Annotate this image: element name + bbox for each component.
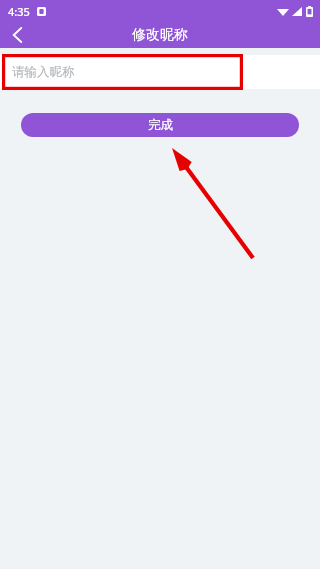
staticText: 修改昵称 <box>132 26 188 44</box>
staticText: 请输入昵称 <box>12 64 75 80</box>
button[interactable]: 返回 <box>0 22 34 48</box>
staticText: 完成 <box>148 117 173 133</box>
staticText: 4:35 <box>8 4 30 19</box>
button[interactable]: 完成 <box>21 113 299 137</box>
button[interactable]: 请输入昵称 <box>0 55 320 89</box>
